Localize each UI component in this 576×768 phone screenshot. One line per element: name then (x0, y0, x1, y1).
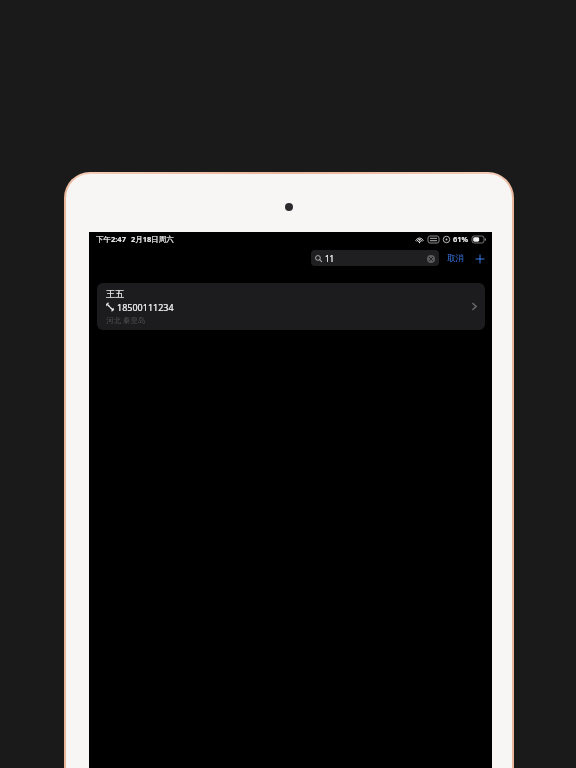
button[interactable]: 取消 (446, 251, 465, 266)
staticText: 11 (325, 253, 335, 264)
staticText: 2月18日周六 (131, 234, 174, 244)
button[interactable]: 11 (311, 250, 439, 266)
staticText: 取消 (447, 253, 464, 264)
staticText: 王五 (106, 288, 124, 299)
button[interactable]: 王五 (97, 283, 485, 330)
staticText: 河北 秦皇岛 (106, 315, 146, 325)
staticText: 61% (453, 234, 469, 244)
button[interactable]: Add contact (473, 252, 486, 265)
button[interactable]: Clear search (426, 254, 435, 263)
staticText: 下午2:47 (96, 234, 126, 244)
staticText: 18500111234 (117, 301, 174, 313)
